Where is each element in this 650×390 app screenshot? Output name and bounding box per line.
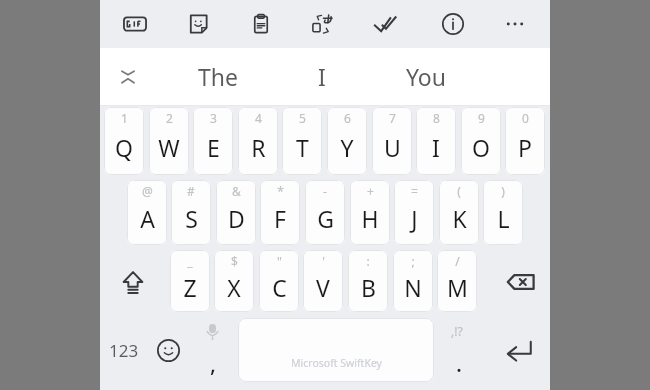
staticText: @ (142, 183, 153, 199)
staticText: N (404, 272, 422, 303)
staticText: Q (115, 132, 133, 163)
button[interactable]: / (437, 250, 477, 312)
button[interactable]: More options (494, 3, 536, 45)
staticText: _ (187, 253, 193, 269)
button[interactable]: ; (393, 250, 433, 312)
staticText: K (452, 203, 467, 234)
button[interactable]: Info (432, 3, 474, 45)
staticText: A (140, 203, 155, 234)
staticText: The (198, 61, 238, 92)
staticText: V (316, 272, 330, 303)
button[interactable]: $ (214, 250, 254, 312)
button[interactable]: & (216, 180, 256, 245)
button[interactable]: * (260, 180, 300, 245)
staticText: , (210, 348, 217, 378)
button[interactable]: ) (483, 180, 523, 245)
button[interactable]: : (348, 250, 388, 312)
staticText: I (318, 61, 326, 92)
staticText: I (432, 132, 440, 163)
staticText: 7 (389, 110, 396, 126)
button[interactable]: Translate (301, 3, 343, 45)
staticText: # (187, 183, 195, 199)
button[interactable]: @ (127, 180, 167, 245)
staticText: Y (340, 132, 354, 163)
staticText: 0 (522, 110, 529, 126)
staticText: 123 (109, 339, 139, 362)
staticText: L (497, 203, 510, 234)
button[interactable]: - (305, 180, 345, 245)
button[interactable]: = (394, 180, 434, 245)
button[interactable]: _ (170, 250, 210, 312)
button[interactable]: " (259, 250, 299, 312)
button[interactable]: ( (439, 180, 479, 245)
staticText: S (185, 203, 198, 234)
button[interactable]: + (350, 180, 390, 245)
button[interactable]: # (171, 180, 211, 245)
staticText: M (447, 272, 468, 303)
button[interactable]: I (278, 48, 366, 105)
staticText: * (277, 183, 284, 199)
button[interactable]: ' (303, 250, 343, 312)
staticText: Z (183, 272, 197, 303)
staticText: T (296, 132, 309, 163)
staticText: : (366, 253, 370, 269)
button[interactable]: You (366, 48, 486, 105)
staticText: X (227, 272, 241, 303)
staticText: 9 (478, 110, 485, 126)
staticText: P (518, 132, 532, 163)
button[interactable]: GIF (114, 3, 156, 45)
button[interactable]: 123 (102, 318, 146, 382)
staticText: 2 (166, 110, 173, 126)
staticText: = (411, 183, 418, 199)
staticText: F (274, 203, 286, 234)
staticText: G (317, 203, 334, 234)
button[interactable]: 2 (149, 107, 189, 175)
staticText: O (472, 132, 490, 163)
staticText: D (228, 203, 245, 234)
button[interactable]: 5 (282, 107, 322, 175)
staticText: R (251, 132, 266, 163)
staticText: C (272, 272, 287, 303)
staticText: 8 (433, 110, 440, 126)
button[interactable]: 4 (238, 107, 278, 175)
staticText: ; (411, 253, 415, 269)
staticText: W (158, 132, 180, 163)
staticText: Microsoft SwiftKey (291, 356, 382, 370)
button[interactable]: The (158, 48, 278, 105)
button[interactable]: 6 (327, 107, 367, 175)
staticText: ' (322, 253, 325, 269)
button[interactable]: 9 (461, 107, 501, 175)
staticText: U (384, 132, 401, 163)
staticText: ( (457, 183, 461, 199)
button[interactable]: 0 (505, 107, 545, 175)
button[interactable]: Emoji (146, 318, 190, 382)
button[interactable]: 3 (193, 107, 233, 175)
button[interactable]: Shift (104, 250, 162, 314)
staticText: / (455, 253, 460, 269)
staticText: . (456, 348, 462, 378)
staticText: ,!? (451, 323, 463, 339)
staticText: " (277, 253, 282, 269)
button[interactable]: Period, punctuation (438, 318, 482, 382)
staticText: B (361, 272, 376, 303)
staticText: 4 (255, 110, 262, 126)
button[interactable]: Editor (364, 3, 406, 45)
staticText: - (323, 183, 327, 199)
button[interactable]: 1 (104, 107, 144, 175)
button[interactable]: 8 (416, 107, 456, 175)
button[interactable]: Stickers (177, 3, 219, 45)
button[interactable]: Enter (490, 318, 548, 382)
button[interactable]: Backspace (492, 250, 550, 314)
button[interactable]: 7 (372, 107, 412, 175)
button[interactable]: Space (238, 318, 434, 382)
staticText: 1 (121, 110, 128, 126)
staticText: 5 (299, 110, 306, 126)
button[interactable]: Clipboard (240, 3, 282, 45)
button[interactable]: Comma, microphone (192, 318, 234, 382)
staticText: E (207, 132, 220, 163)
staticText: $ (231, 253, 238, 269)
staticText: 6 (344, 110, 351, 126)
staticText: + (367, 183, 374, 199)
staticText: ) (501, 183, 505, 199)
button[interactable]: Collapse suggestions (106, 54, 150, 98)
